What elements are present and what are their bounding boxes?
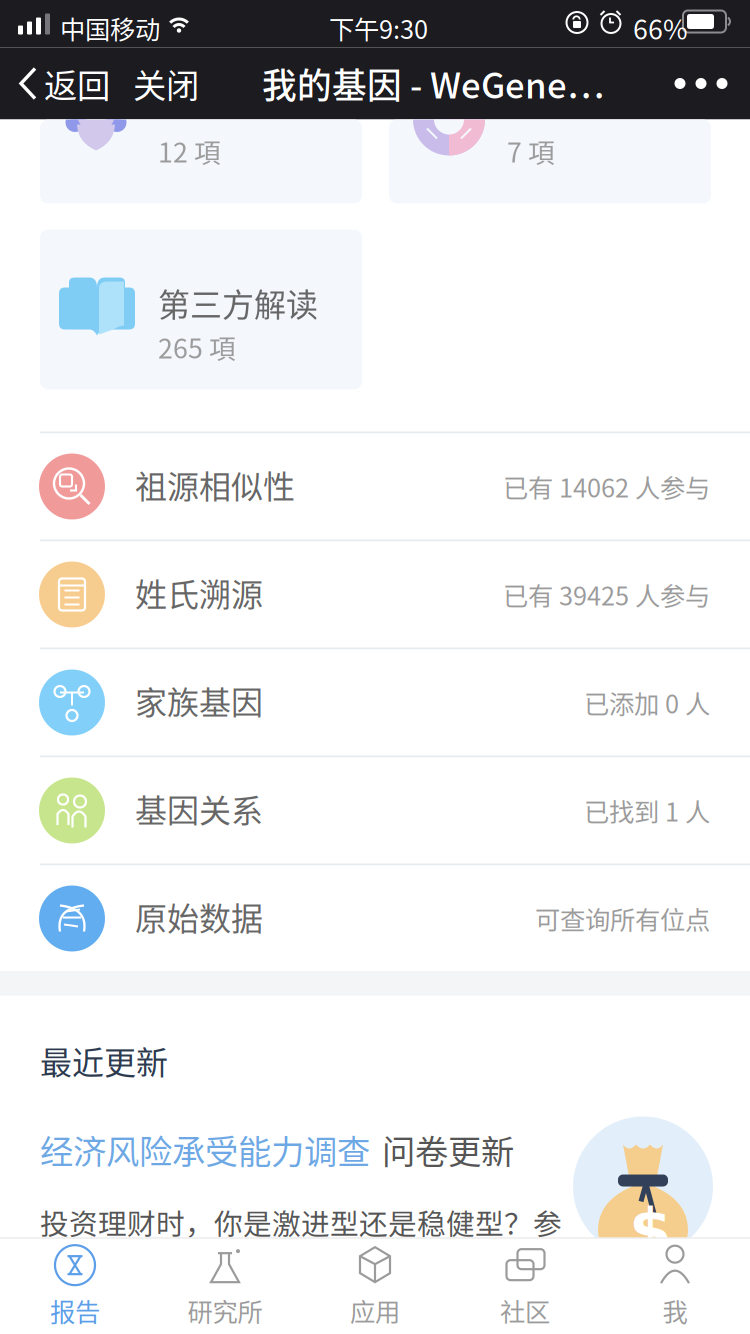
staticText: 7 項 (507, 131, 555, 170)
button[interactable]: 祖源相似性 (0, 433, 750, 539)
button[interactable]: 7 項 (389, 119, 711, 203)
staticText: 265 項 (158, 327, 236, 366)
button[interactable]: 研究所 (150, 1238, 300, 1334)
staticText: 66% (633, 8, 688, 47)
staticText: 经济风险承受能力调查 (40, 1125, 370, 1174)
staticText: 已有 14062 人参与 (503, 468, 710, 505)
staticText: 第三方解读 (158, 279, 318, 326)
button[interactable]: More options (660, 47, 742, 119)
staticText: 中国移动 (60, 9, 160, 46)
staticText: 12 項 (158, 131, 221, 170)
staticText: 研究所 (187, 1292, 262, 1329)
staticText: 家族基因 (135, 677, 263, 724)
button[interactable]: 社区 (450, 1238, 600, 1334)
staticText: 已找到 1 人 (584, 792, 710, 829)
staticText: 祖源相似性 (135, 461, 295, 508)
staticText: 姓氏溯源 (135, 569, 263, 616)
staticText: 我 (662, 1292, 687, 1329)
button[interactable]: 经济风险承受能力调查 (40, 1125, 514, 1173)
staticText: 返回 (44, 59, 110, 108)
button[interactable]: 我 (600, 1238, 750, 1334)
button[interactable]: 姓氏溯源 (0, 541, 750, 647)
button[interactable]: 基因关系 (0, 757, 750, 863)
staticText: 我的基因 - WeGene… (262, 58, 604, 109)
staticText: 原始数据 (135, 893, 263, 940)
button[interactable]: 家族基因 (0, 649, 750, 755)
button[interactable]: 应用 (300, 1238, 450, 1334)
staticText: 可查询所有位点 (535, 900, 710, 937)
button[interactable]: 报告 (0, 1238, 150, 1334)
staticText: 下午9:30 (329, 9, 428, 46)
button[interactable]: 第三方解读 (40, 229, 362, 389)
staticText: 最近更新 (40, 1037, 168, 1084)
staticText: 已有 39425 人参与 (503, 576, 710, 613)
button[interactable]: 关闭 (133, 47, 203, 119)
staticText: 问卷更新 (382, 1125, 514, 1174)
button[interactable]: 原始数据 (0, 865, 750, 971)
button[interactable]: 12 項 (40, 119, 362, 203)
staticText: 社区 (500, 1292, 550, 1329)
staticText: $ (629, 1194, 672, 1266)
button[interactable]: 返回 (18, 47, 132, 119)
staticText: 应用 (350, 1292, 400, 1329)
staticText: 关闭 (133, 59, 199, 108)
staticText: 报告 (50, 1292, 100, 1329)
staticText: 已添加 0 人 (584, 684, 710, 721)
staticText: 基因关系 (135, 785, 263, 832)
staticText: 投资理财时，你是激进型还是稳健型？参 (40, 1201, 562, 1243)
